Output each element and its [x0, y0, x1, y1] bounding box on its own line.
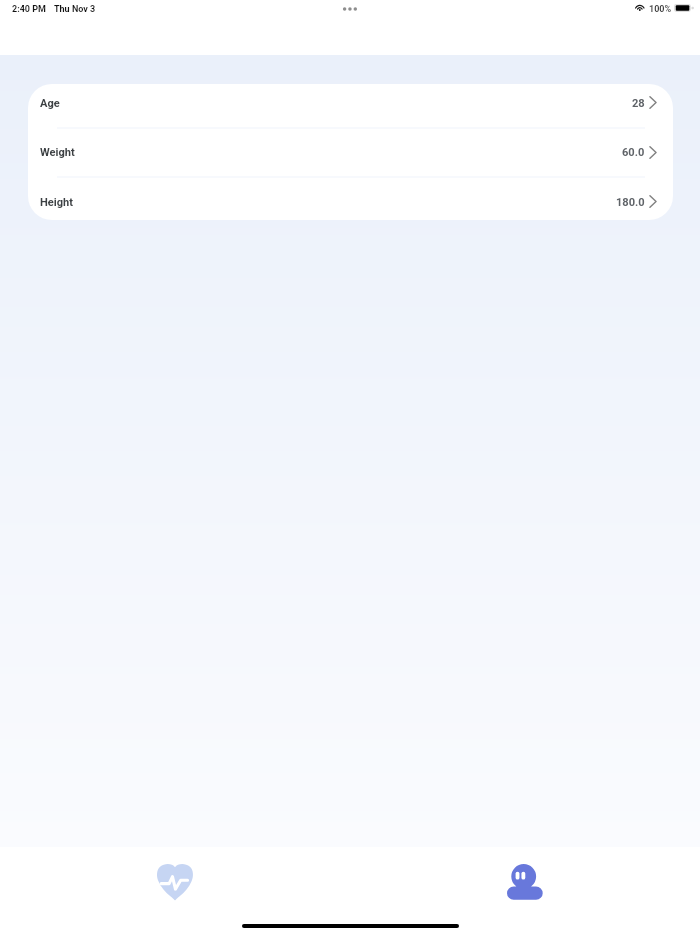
staticText: 2:40 PM — [12, 4, 46, 15]
staticText: 180.0 — [616, 196, 645, 209]
staticText: Age — [40, 97, 60, 110]
button[interactable]: Health — [0, 847, 350, 916]
staticText: 28 — [632, 97, 645, 110]
button[interactable]: Profile — [350, 847, 700, 916]
staticText: Height — [40, 196, 74, 209]
staticText: 100% — [649, 4, 672, 15]
staticText: 60.0 — [622, 146, 645, 159]
button[interactable]: Height — [28, 178, 673, 220]
staticText: Thu Nov 3 — [54, 4, 96, 15]
button[interactable]: Weight — [28, 128, 673, 176]
button[interactable]: Age — [28, 84, 673, 127]
staticText: Weight — [40, 146, 75, 159]
